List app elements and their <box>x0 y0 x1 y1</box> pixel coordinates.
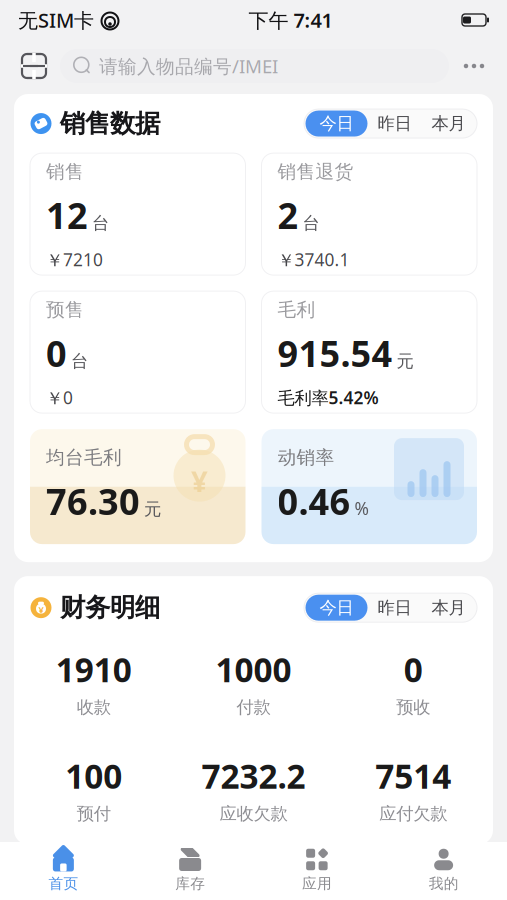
staticText: 均台毛利 <box>46 446 122 469</box>
staticText: 动销率 <box>277 446 334 469</box>
button[interactable]: 应用 <box>253 841 380 900</box>
staticText: 本月 <box>431 113 465 134</box>
button[interactable]: 首页 <box>0 841 127 900</box>
staticText: ￥0 <box>46 386 73 409</box>
staticText: 付款 <box>236 696 270 718</box>
staticText: ￥7210 <box>46 248 103 271</box>
staticText: 1910 <box>56 647 132 691</box>
staticText: 100 <box>65 754 122 798</box>
staticText: 2 <box>277 191 298 239</box>
button[interactable]: 本月 <box>421 111 475 137</box>
staticText: 0.46 <box>277 477 350 525</box>
staticText: 台 <box>302 213 319 234</box>
staticText: ¥ <box>38 603 43 616</box>
button[interactable]: 动销率 <box>261 429 477 544</box>
staticText: 下午 7:41 <box>248 7 332 33</box>
button[interactable]: 今日 <box>305 595 367 621</box>
staticText: 请输入物品编号/IMEI <box>99 54 278 78</box>
button[interactable]: 0 <box>333 647 493 718</box>
staticText: 库存 <box>175 874 205 892</box>
staticText: 元 <box>396 351 413 372</box>
staticText: 今日 <box>319 597 353 618</box>
button[interactable]: 扫一扫 <box>20 52 48 80</box>
staticText: 0 <box>404 647 423 691</box>
button[interactable]: 销售 <box>30 153 245 275</box>
staticText: 应收欠款 <box>219 803 287 824</box>
staticText: % <box>354 497 368 520</box>
button[interactable]: 100 <box>14 754 174 824</box>
button[interactable]: 更多 <box>461 53 487 79</box>
staticText: 7232.2 <box>201 754 305 798</box>
staticText: 毛利 <box>277 298 315 321</box>
staticText: 台 <box>92 213 109 234</box>
staticText: 无SIM卡 <box>18 7 94 33</box>
staticText: 今日 <box>319 113 353 134</box>
staticText: 昨日 <box>377 597 411 618</box>
staticText: 我的 <box>429 874 459 892</box>
staticText: 毛利率5.42% <box>277 386 378 409</box>
staticText: 销售数据 <box>60 108 160 139</box>
button[interactable]: 7232.2 <box>174 754 333 824</box>
staticText: ¥ <box>191 462 208 501</box>
button[interactable]: 1910 <box>14 647 174 718</box>
staticText: 76.30 <box>46 477 140 525</box>
button[interactable]: 昨日 <box>367 595 421 621</box>
button[interactable]: 销售退货 <box>261 153 477 275</box>
button[interactable]: 毛利 <box>261 291 477 413</box>
staticText: 应用 <box>302 874 332 892</box>
staticText: 元 <box>144 498 161 520</box>
staticText: 7514 <box>375 754 451 798</box>
staticText: 首页 <box>48 874 78 892</box>
staticText: ￥3740.1 <box>277 248 349 271</box>
staticText: 销售 <box>46 160 84 183</box>
staticText: 收款 <box>77 696 111 718</box>
button[interactable]: 我的 <box>380 841 507 900</box>
button[interactable]: 本月 <box>421 595 475 621</box>
staticText: 应付欠款 <box>379 803 447 824</box>
button[interactable]: 1000 <box>174 647 333 718</box>
staticText: 财务明细 <box>60 592 160 623</box>
staticText: 昨日 <box>377 113 411 134</box>
button[interactable]: ¥ <box>30 429 245 544</box>
staticText: 915.54 <box>277 329 392 377</box>
staticText: 预售 <box>46 298 84 321</box>
staticText: 台 <box>71 351 88 372</box>
button[interactable]: 今日 <box>305 111 367 137</box>
staticText: 0 <box>46 329 67 377</box>
button[interactable]: 预售 <box>30 291 245 413</box>
button[interactable]: 库存 <box>127 841 254 900</box>
button[interactable]: 昨日 <box>367 111 421 137</box>
staticText: 预收 <box>396 696 430 718</box>
staticText: 销售退货 <box>277 160 353 183</box>
button[interactable]: 7514 <box>333 754 493 824</box>
staticText: 1000 <box>215 647 291 691</box>
staticText: 预付 <box>77 803 111 824</box>
staticText: 本月 <box>431 597 465 618</box>
staticText: 12 <box>46 191 88 239</box>
